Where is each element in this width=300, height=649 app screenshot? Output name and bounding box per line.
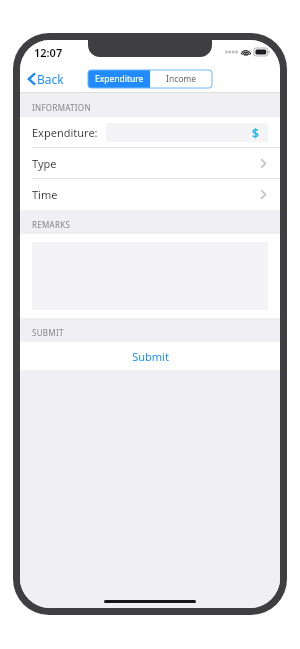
button[interactable]: Income xyxy=(150,70,212,88)
staticText: Income xyxy=(166,73,197,85)
button[interactable]: $ xyxy=(106,123,268,142)
staticText: Submit xyxy=(132,349,169,364)
staticText: 12:07 xyxy=(34,45,63,60)
button[interactable]: Type xyxy=(20,148,280,179)
button[interactable]: Expenditure xyxy=(88,70,150,88)
staticText: Expenditure xyxy=(95,73,144,85)
staticText: Time xyxy=(32,187,58,202)
staticText: Expenditure: xyxy=(32,125,98,140)
staticText: Back xyxy=(37,71,64,87)
other: Wi-Fi xyxy=(241,48,251,56)
staticText: SUBMIT xyxy=(32,327,64,338)
other: Battery xyxy=(254,48,270,56)
button[interactable]: Submit xyxy=(20,342,280,370)
staticText: Type xyxy=(32,156,57,171)
staticText: $ xyxy=(252,125,259,141)
button[interactable]: Time xyxy=(20,179,280,210)
staticText: INFORMATION xyxy=(32,102,91,113)
staticText: REMARKS xyxy=(32,219,71,230)
button[interactable]: Back xyxy=(20,67,70,91)
